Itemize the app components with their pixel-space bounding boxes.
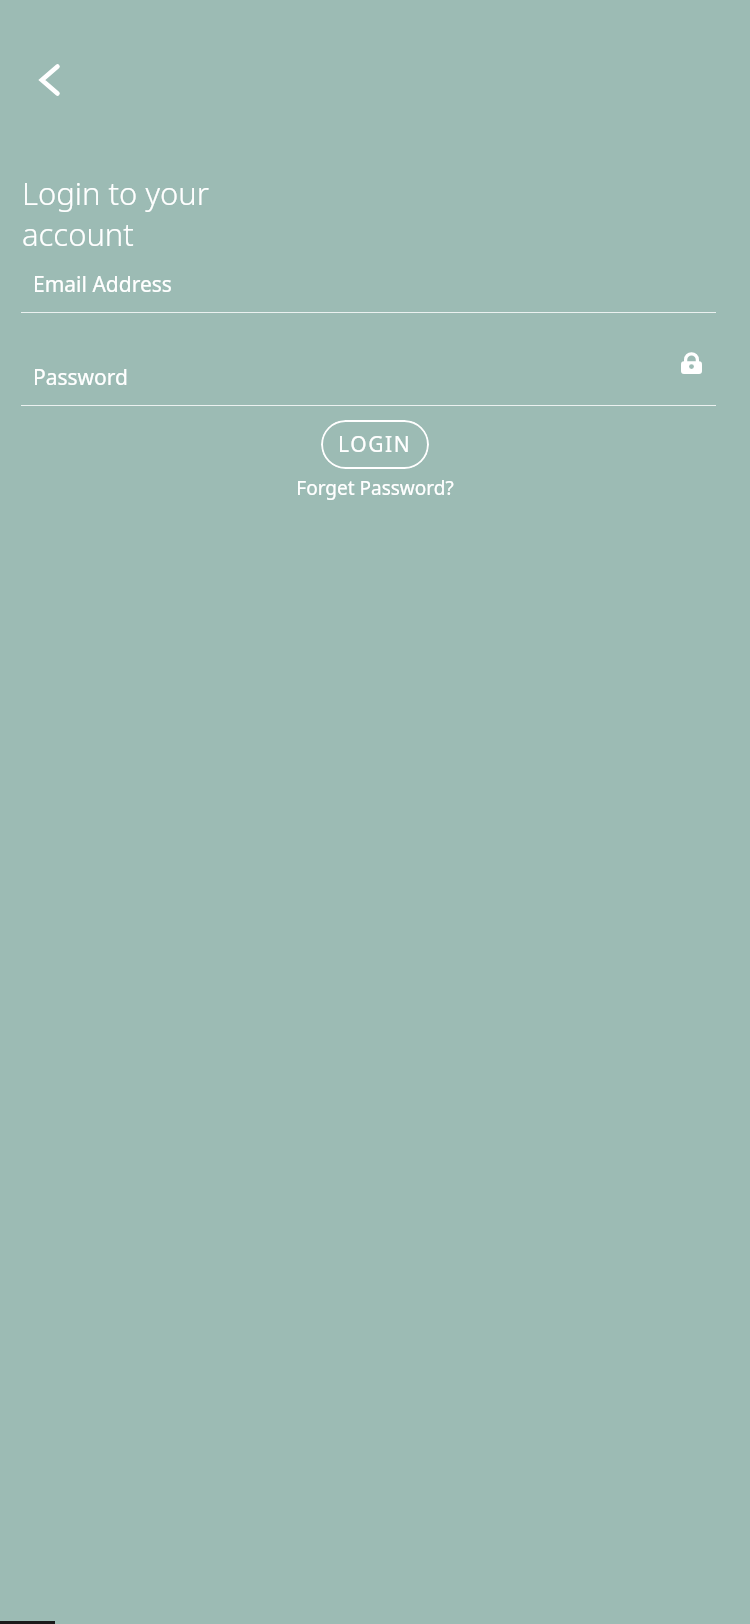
button[interactable]: LOGIN — [321, 420, 429, 469]
button[interactable]: Forget Password? — [286, 467, 464, 509]
button[interactable]: Password — [21, 343, 716, 406]
button[interactable]: Back — [18, 48, 82, 112]
button[interactable]: Email Address — [21, 270, 716, 313]
staticText: Password — [33, 363, 128, 392]
staticText: LOGIN — [338, 430, 412, 459]
button[interactable]: Password locked — [671, 343, 711, 383]
staticText: Login to your account — [22, 172, 732, 255]
staticText: Forget Password? — [296, 475, 454, 501]
staticText: Email Address — [33, 270, 172, 299]
